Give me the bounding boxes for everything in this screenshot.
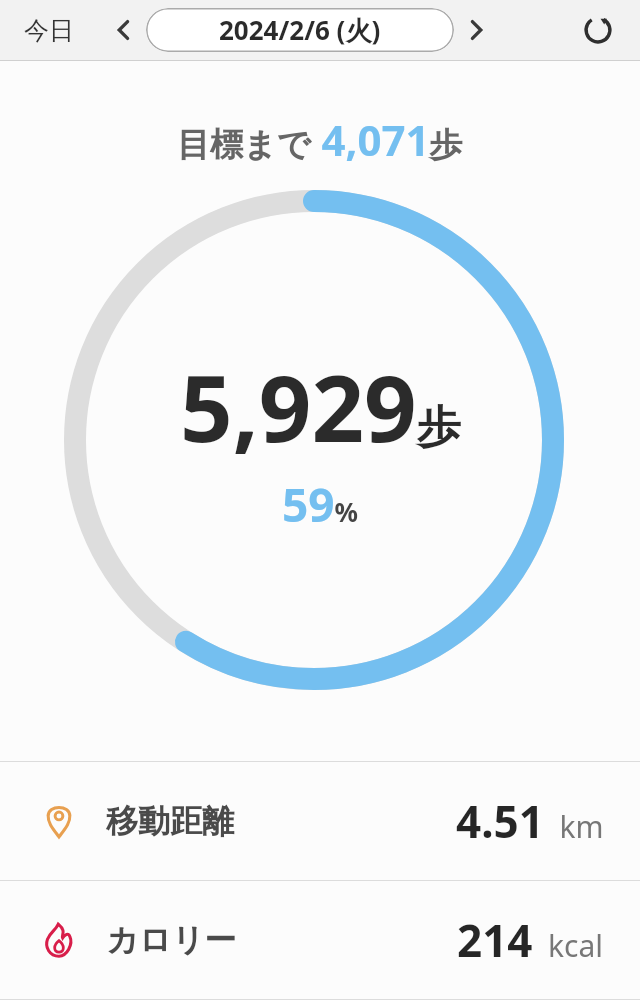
staticText: 2024/2/6 (火) bbox=[219, 12, 381, 48]
staticText: 移動距離 bbox=[106, 801, 234, 841]
button[interactable]: 今日 bbox=[14, 9, 84, 52]
staticText: 214 kcal bbox=[457, 910, 604, 970]
button[interactable]: Refresh bbox=[574, 6, 622, 54]
staticText: カロリー bbox=[106, 920, 237, 960]
staticText: 目標まで 4,071歩 bbox=[177, 111, 463, 168]
staticText: 4.51 km bbox=[456, 791, 604, 851]
button[interactable]: 2024/2/6 (火) bbox=[146, 8, 454, 52]
button[interactable]: カロリー bbox=[0, 881, 640, 999]
button[interactable]: 移動距離 bbox=[0, 762, 640, 880]
staticText: 今日 bbox=[24, 15, 74, 46]
staticText: 59% bbox=[282, 473, 359, 536]
button[interactable]: Previous day bbox=[102, 8, 146, 52]
staticText: 5,929歩 bbox=[180, 344, 461, 469]
button[interactable]: Next day bbox=[454, 8, 498, 52]
